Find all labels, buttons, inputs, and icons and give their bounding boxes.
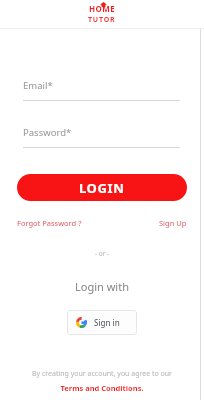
button[interactable]: Sign Up [159,218,187,228]
button[interactable]: Google [67,310,137,335]
staticText: TUTOR [88,15,116,25]
other: Google [76,317,87,328]
button[interactable]: Email* [23,79,180,101]
staticText: - or - [95,249,110,258]
button[interactable]: Terms and Conditions. [60,383,144,393]
staticText: By creating your account, you agree to o… [32,369,172,379]
staticText: Sign in [94,317,120,328]
staticText: Forgot Password ? [17,218,82,228]
button[interactable]: Forgot Password ? [17,218,82,228]
button[interactable]: LOGIN [17,174,187,201]
button[interactable]: Password* [23,126,180,148]
staticText: Sign Up [159,218,187,228]
staticText: Terms and Conditions. [60,383,144,393]
staticText: Login with [75,279,129,294]
staticText: Email* [23,79,53,92]
staticText: HOME [89,3,116,14]
staticText: Password* [23,126,72,139]
staticText: LOGIN [79,179,125,197]
